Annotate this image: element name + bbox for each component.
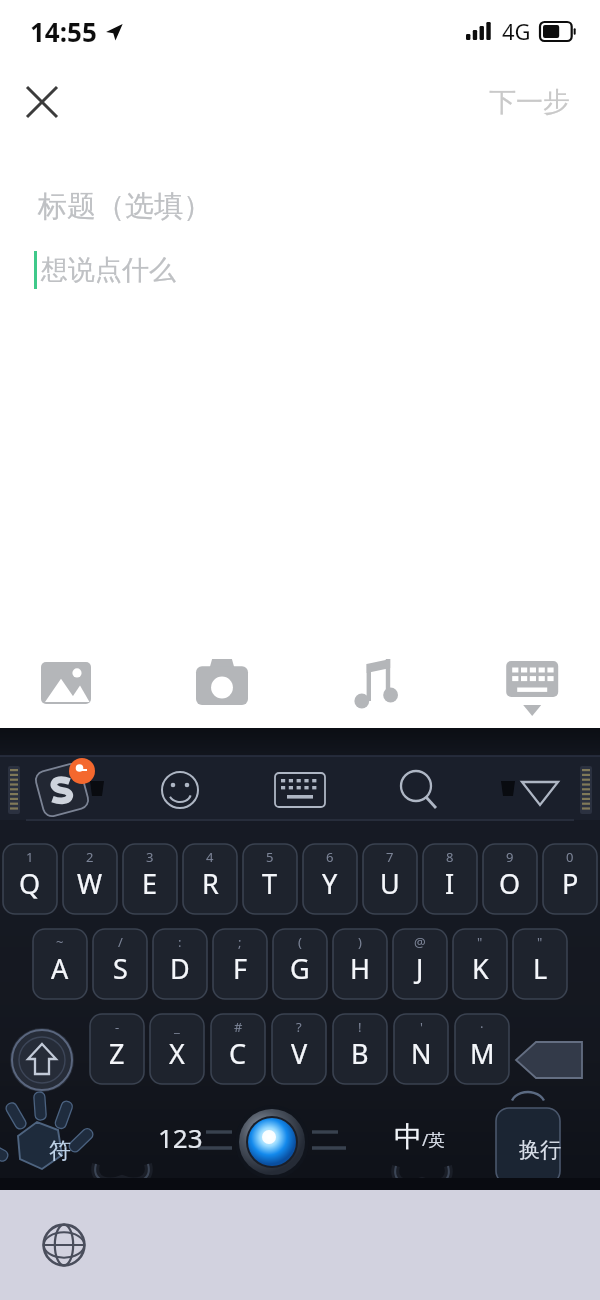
button[interactable]: Z bbox=[90, 1014, 144, 1084]
staticText: _ bbox=[174, 1018, 180, 1036]
staticText: - bbox=[115, 1018, 120, 1036]
button[interactable]: Gallery bbox=[0, 638, 150, 728]
staticText: D bbox=[170, 950, 190, 987]
staticText: ! bbox=[358, 1018, 362, 1036]
staticText: 3 bbox=[146, 848, 154, 866]
staticText: C bbox=[229, 1035, 247, 1072]
button[interactable]: D bbox=[153, 929, 207, 999]
staticText: · bbox=[480, 1018, 484, 1036]
staticText: 7 bbox=[386, 848, 394, 866]
staticText: 4 bbox=[206, 848, 214, 866]
staticText: 符 bbox=[49, 1137, 71, 1165]
button[interactable]: Sogou input bbox=[0, 728, 120, 844]
staticText: ) bbox=[358, 933, 362, 951]
button[interactable]: Close bbox=[14, 74, 70, 130]
staticText: Z bbox=[109, 1035, 125, 1072]
staticText: W bbox=[77, 865, 103, 902]
button[interactable]: Q bbox=[3, 844, 57, 914]
button[interactable]: G bbox=[273, 929, 327, 999]
staticText: 9 bbox=[506, 848, 514, 866]
staticText: A bbox=[51, 950, 69, 987]
staticText: ' bbox=[420, 1018, 423, 1036]
staticText: M bbox=[470, 1035, 495, 1072]
staticText: 0 bbox=[566, 848, 574, 866]
staticText: I bbox=[445, 865, 455, 902]
staticText: 2 bbox=[86, 848, 94, 866]
staticText: ; bbox=[238, 933, 242, 951]
staticText: 1 bbox=[26, 848, 34, 866]
staticText: 123 bbox=[158, 1120, 203, 1155]
staticText: P bbox=[562, 865, 579, 902]
staticText: 6 bbox=[326, 848, 334, 866]
staticText: /英 bbox=[422, 1128, 446, 1151]
button[interactable]: 想说点什么 bbox=[0, 233, 600, 289]
button[interactable]: C bbox=[211, 1014, 265, 1084]
button[interactable]: Keyboard layout bbox=[240, 728, 360, 844]
staticText: 下一步 bbox=[489, 85, 570, 119]
button[interactable]: M bbox=[455, 1014, 509, 1084]
button[interactable]: 下一步 bbox=[477, 75, 582, 129]
staticText: 14:55 bbox=[30, 14, 97, 49]
button[interactable]: P bbox=[543, 844, 597, 914]
button[interactable]: Chinese English toggle bbox=[360, 1102, 480, 1190]
button[interactable]: Change language bbox=[28, 1209, 100, 1281]
staticText: J bbox=[416, 950, 424, 987]
button[interactable]: U bbox=[363, 844, 417, 914]
button[interactable]: W bbox=[63, 844, 117, 914]
staticText: S bbox=[113, 950, 128, 987]
staticText: L bbox=[533, 950, 548, 987]
staticText: V bbox=[291, 1035, 308, 1072]
button[interactable]: J bbox=[393, 929, 447, 999]
staticText: U bbox=[380, 865, 400, 902]
button[interactable]: X bbox=[150, 1014, 204, 1084]
button[interactable]: Space bbox=[240, 1102, 360, 1190]
button[interactable]: T bbox=[243, 844, 297, 914]
button[interactable]: R bbox=[183, 844, 237, 914]
button[interactable]: Emoji bbox=[120, 728, 240, 844]
button[interactable]: S bbox=[93, 929, 147, 999]
staticText: 换行 bbox=[519, 1137, 561, 1163]
staticText: : bbox=[178, 933, 182, 951]
button[interactable]: Backspace bbox=[512, 1014, 600, 1102]
button[interactable]: Symbols bbox=[0, 1102, 120, 1190]
button[interactable]: A bbox=[33, 929, 87, 999]
staticText: Y bbox=[322, 865, 338, 902]
button[interactable]: O bbox=[483, 844, 537, 914]
button[interactable]: Enter bbox=[480, 1102, 600, 1190]
button[interactable]: Numbers bbox=[120, 1102, 240, 1190]
button[interactable]: B bbox=[333, 1014, 387, 1084]
staticText: " bbox=[537, 933, 543, 951]
staticText: F bbox=[233, 950, 248, 987]
button[interactable]: H bbox=[333, 929, 387, 999]
staticText: ( bbox=[298, 933, 302, 951]
button[interactable]: Music bbox=[300, 638, 450, 728]
staticText: B bbox=[351, 1035, 369, 1072]
staticText: O bbox=[499, 865, 521, 902]
button[interactable]: 标题（选填） bbox=[0, 188, 600, 233]
staticText: / bbox=[118, 933, 123, 951]
button[interactable]: Search bbox=[360, 728, 480, 844]
staticText: N bbox=[411, 1035, 432, 1072]
staticText: G bbox=[290, 950, 310, 987]
staticText: 8 bbox=[446, 848, 454, 866]
button[interactable]: E bbox=[123, 844, 177, 914]
button[interactable]: F bbox=[213, 929, 267, 999]
button[interactable]: V bbox=[272, 1014, 326, 1084]
staticText: 标题（选填） bbox=[38, 188, 212, 225]
button[interactable]: K bbox=[453, 929, 507, 999]
staticText: 5 bbox=[266, 848, 274, 866]
staticText: 4G bbox=[502, 16, 531, 46]
button[interactable]: I bbox=[423, 844, 477, 914]
button[interactable]: Shift bbox=[0, 1014, 87, 1102]
staticText: T bbox=[262, 865, 278, 902]
button[interactable]: L bbox=[513, 929, 567, 999]
button[interactable]: Keyboard bbox=[450, 638, 600, 728]
button[interactable]: Hide keyboard bbox=[480, 728, 600, 844]
button[interactable]: Y bbox=[303, 844, 357, 914]
staticText: E bbox=[142, 865, 158, 902]
staticText: Q bbox=[19, 865, 41, 902]
staticText: X bbox=[169, 1035, 185, 1072]
staticText: H bbox=[350, 950, 371, 987]
button[interactable]: Camera bbox=[150, 638, 300, 728]
button[interactable]: N bbox=[394, 1014, 448, 1084]
